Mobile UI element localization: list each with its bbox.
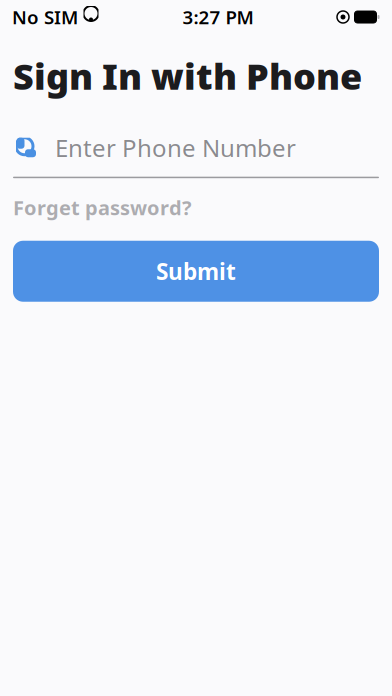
staticText: No SIM xyxy=(12,5,78,29)
staticText: Sign In with Phone xyxy=(13,52,362,100)
staticText: Submit xyxy=(156,256,236,286)
staticText: 3:27 PM xyxy=(182,5,253,29)
button[interactable]: Forget password? xyxy=(0,178,392,227)
staticText: Forget password? xyxy=(13,194,192,221)
button[interactable]: Submit xyxy=(13,241,379,302)
staticText: Enter Phone Number xyxy=(55,132,296,164)
